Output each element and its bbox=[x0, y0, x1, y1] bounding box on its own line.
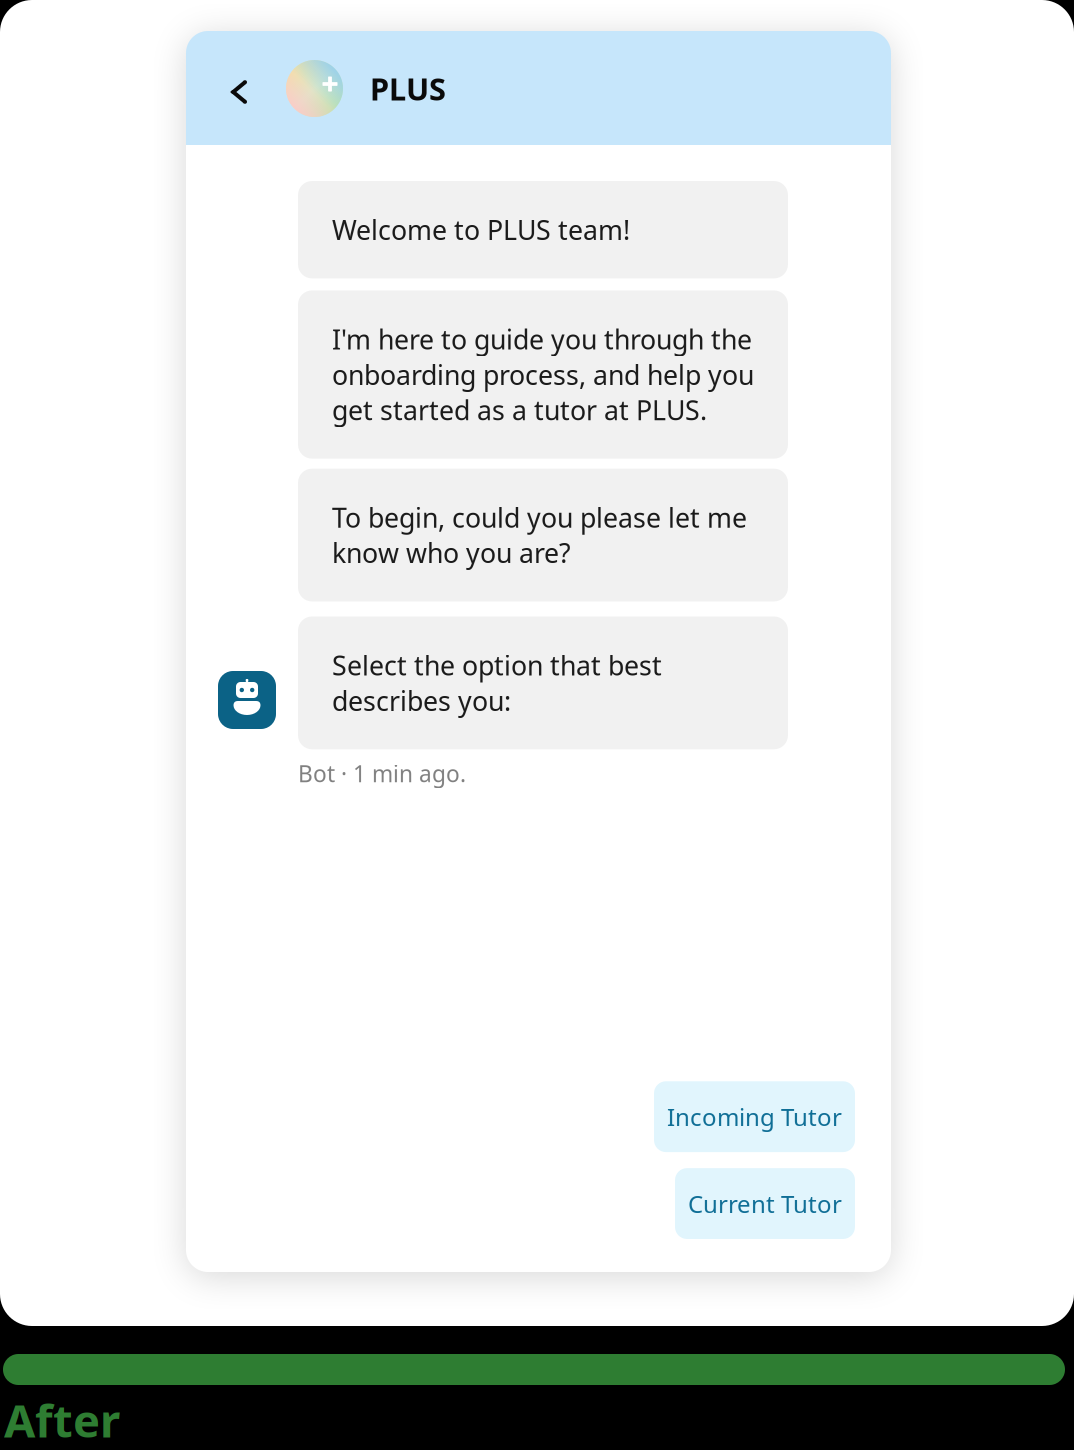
button[interactable]: Back bbox=[216, 66, 262, 118]
staticText: Current Tutor bbox=[688, 1188, 842, 1219]
button[interactable]: Current Tutor bbox=[675, 1168, 855, 1239]
button[interactable]: Incoming Tutor bbox=[654, 1081, 855, 1152]
staticText: Welcome to PLUS team! bbox=[332, 212, 630, 247]
staticText: I'm here to guide you through the onboar… bbox=[332, 321, 754, 428]
staticText: After bbox=[4, 1390, 120, 1450]
button[interactable]: PLUS conversation details bbox=[286, 54, 446, 123]
staticText: Select the option that best describes yo… bbox=[332, 647, 662, 718]
staticText: To begin, could you please let me know w… bbox=[332, 500, 747, 570]
staticText: Bot · 1 min ago. bbox=[298, 758, 466, 788]
staticText: Incoming Tutor bbox=[667, 1101, 842, 1133]
staticText: PLUS bbox=[370, 68, 446, 109]
